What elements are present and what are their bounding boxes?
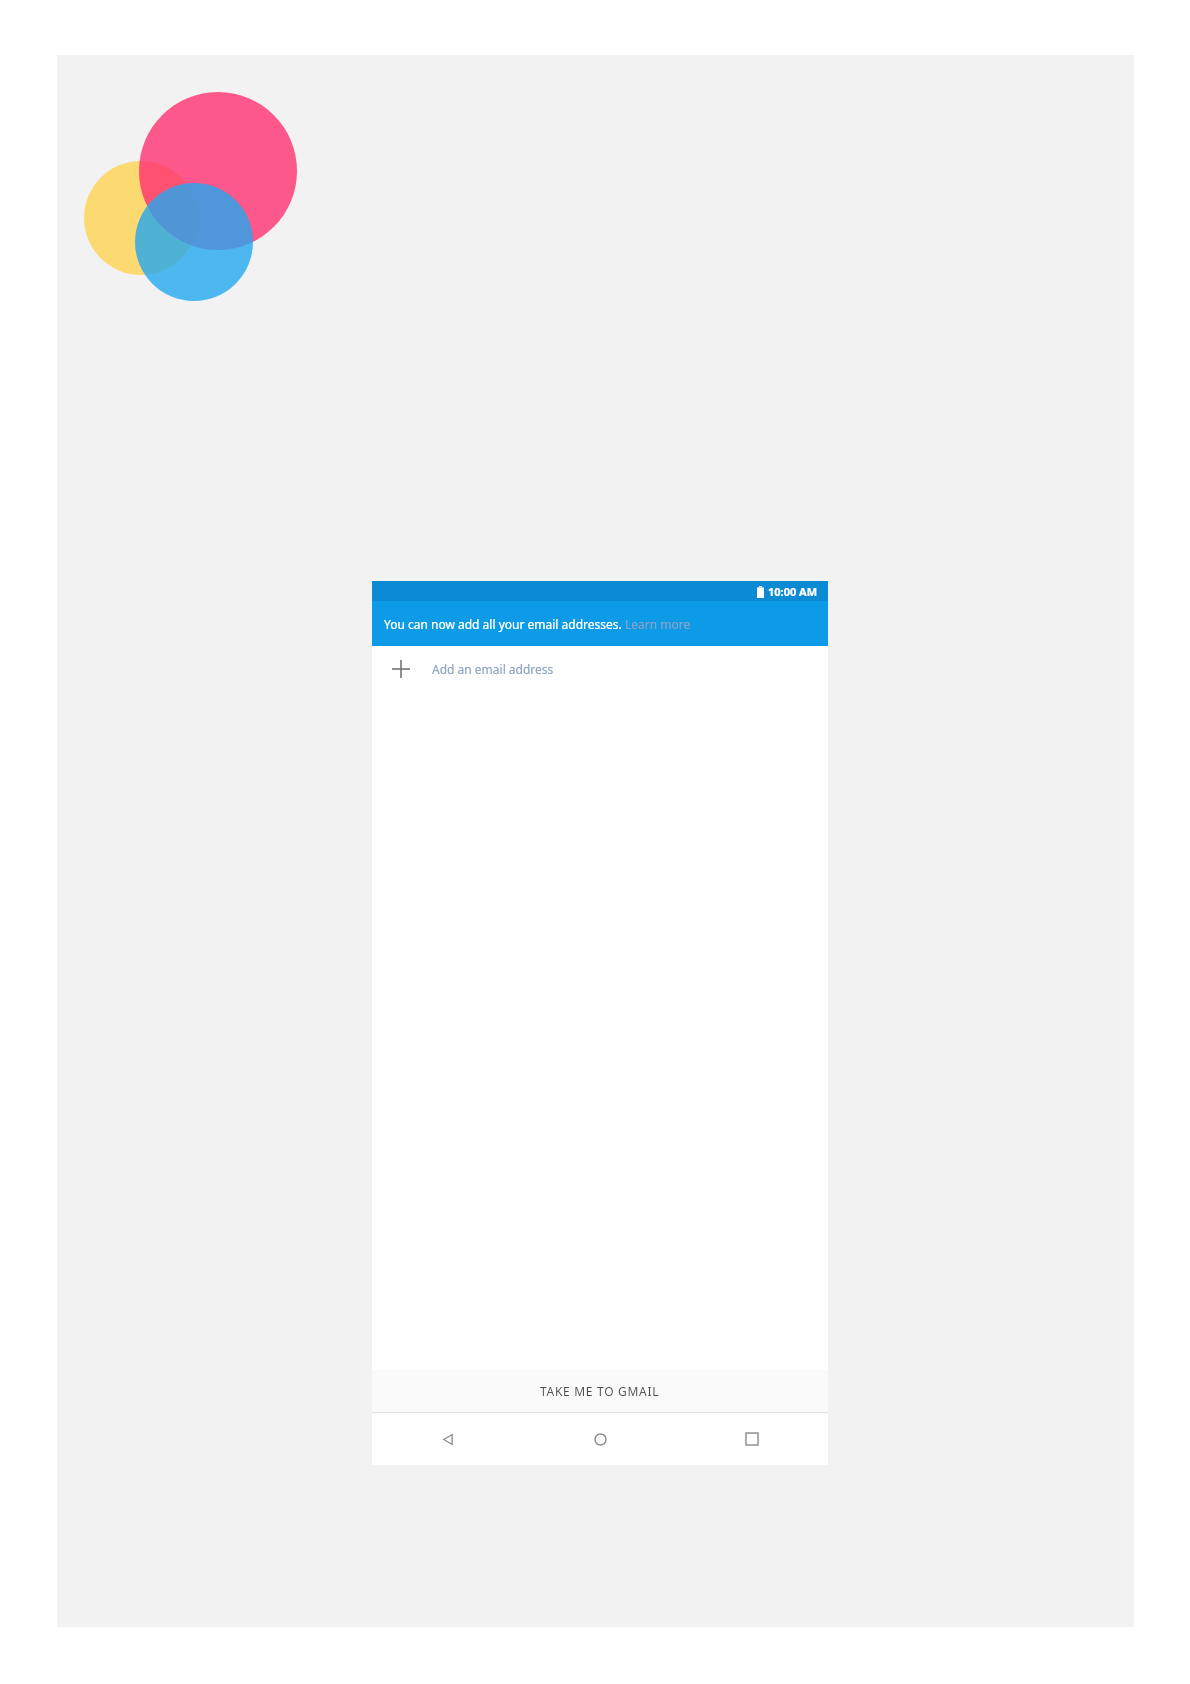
staticText: You can now add all your email addresses… [384,616,625,632]
button[interactable]: Add an email address [372,646,828,692]
button[interactable]: Back [372,1413,524,1465]
staticText: TAKE ME TO GMAIL [540,1383,660,1399]
button[interactable]: TAKE ME TO GMAIL [372,1370,828,1412]
button[interactable]: Learn more [625,616,691,632]
button[interactable]: You can now add all your email addresses… [372,601,828,646]
staticText: 10:00 AM [768,584,818,599]
button[interactable]: Home [524,1413,676,1465]
button[interactable]: Recent apps [676,1413,828,1465]
staticText: Add an email address [432,661,554,677]
